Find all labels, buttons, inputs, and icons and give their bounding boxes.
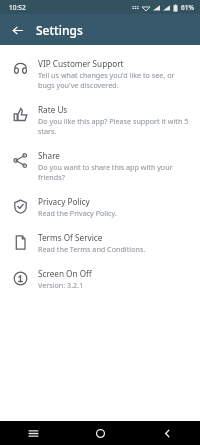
staticText: Do you like this app? Please support it …: [38, 116, 192, 136]
button[interactable]: Recent apps: [16, 421, 50, 445]
button[interactable]: VIP Customer Support: [0, 51, 200, 97]
staticText: Share: [38, 150, 60, 161]
button[interactable]: Terms Of Service: [0, 225, 200, 261]
button[interactable]: Share: [0, 143, 200, 189]
staticText: Read the Terms and Conditions.: [38, 244, 146, 254]
button[interactable]: Rate Us: [0, 97, 200, 143]
staticText: Do you want to share this app with your …: [38, 162, 192, 182]
button[interactable]: Privacy Policy: [0, 189, 200, 225]
staticText: Version: 3.2.1: [38, 280, 84, 290]
staticText: Settings: [36, 22, 83, 38]
button[interactable]: Screen On Off: [0, 261, 200, 297]
staticText: Screen On Off: [38, 268, 92, 279]
staticText: Read the Privacy Policy.: [38, 208, 117, 218]
staticText: Terms Of Service: [38, 232, 103, 243]
staticText: VIP Customer Support: [38, 58, 124, 69]
button[interactable]: Back: [150, 421, 184, 445]
staticText: 10:52: [9, 3, 26, 12]
staticText: Tell us what changes you'd like to see, …: [38, 70, 192, 90]
staticText: Rate Us: [38, 104, 68, 115]
staticText: 61%: [181, 3, 194, 12]
staticText: Privacy Policy: [38, 196, 90, 207]
button[interactable]: Home: [83, 421, 117, 445]
button[interactable]: Back: [8, 21, 26, 39]
